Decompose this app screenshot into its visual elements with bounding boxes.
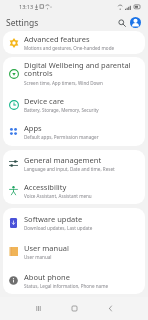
staticText: Digital Wellbeing and parental controls (24, 60, 139, 79)
staticText: Apps (24, 123, 42, 133)
staticText: User manual (24, 254, 52, 260)
button[interactable]: Account (130, 17, 141, 28)
button[interactable]: General management (3, 150, 145, 177)
staticText: Download updates, Last update (24, 225, 93, 231)
button[interactable]: Apps (3, 118, 145, 146)
button[interactable]: Home (62, 297, 86, 320)
staticText: Status, Legal information, Phone name (24, 283, 109, 289)
button[interactable]: Software update (3, 208, 145, 237)
staticText: Default apps, Permission manager (24, 134, 99, 140)
staticText: Language and input, Date and time, Reset (24, 166, 115, 172)
staticText: Voice Assistant, Assistant menu (24, 193, 92, 199)
staticText: User manual (24, 243, 69, 253)
staticText: 13:13 (19, 3, 34, 10)
button[interactable]: Back (98, 297, 122, 320)
staticText: Settings (6, 17, 39, 29)
button[interactable]: Advanced features (3, 31, 145, 54)
button[interactable]: User manual (3, 237, 145, 266)
staticText: Screen time, App timers, Wind Down (24, 80, 103, 86)
button[interactable]: Search (115, 16, 128, 29)
staticText: Motions and gestures, One-handed mode (24, 45, 115, 51)
staticText: Software update (24, 214, 83, 224)
button[interactable]: Accessibility (3, 177, 145, 204)
button[interactable]: About phone (3, 266, 145, 294)
staticText: Accessibility (24, 182, 67, 192)
staticText: Device care (24, 96, 65, 106)
staticText: General management (24, 155, 102, 165)
staticText: Battery, Storage, Memory, Security (24, 107, 99, 113)
button[interactable]: Recent apps (26, 297, 50, 320)
button[interactable]: Digital Wellbeing and parental controls (3, 57, 145, 90)
button[interactable]: Device care (3, 90, 145, 118)
staticText: About phone (24, 272, 70, 282)
staticText: Advanced features (24, 34, 90, 44)
